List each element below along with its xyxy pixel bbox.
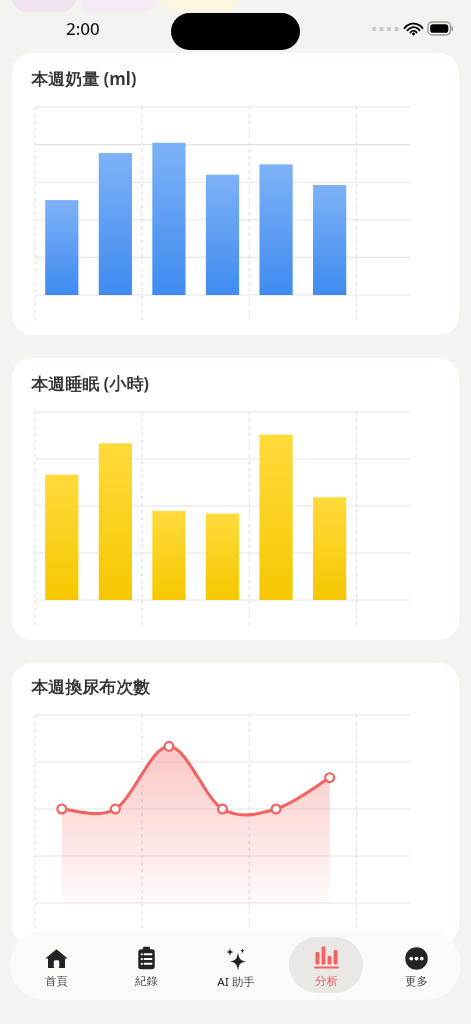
staticText: 紀錄: [135, 974, 158, 988]
button[interactable]: 更多: [379, 937, 453, 993]
button[interactable]: 紀錄: [109, 937, 183, 993]
staticText: 本週換尿布次數: [31, 677, 150, 698]
button[interactable]: 分析: [289, 937, 363, 993]
staticText: 更多: [405, 974, 428, 988]
staticText: 2:00: [66, 17, 100, 40]
staticText: 本週奶量 (ml): [31, 67, 137, 90]
other: 首頁: [44, 946, 69, 971]
button[interactable]: 首頁: [19, 937, 93, 993]
other: 更多: [404, 946, 429, 971]
staticText: 分析: [315, 974, 338, 988]
other: 分析: [314, 946, 339, 971]
other: AI 助手: [224, 946, 249, 971]
staticText: AI 助手: [217, 974, 255, 990]
other: 紀錄: [134, 946, 159, 971]
staticText: 本週睡眠 (小時): [31, 372, 149, 395]
staticText: 首頁: [45, 974, 68, 988]
button[interactable]: AI 助手: [199, 937, 273, 993]
